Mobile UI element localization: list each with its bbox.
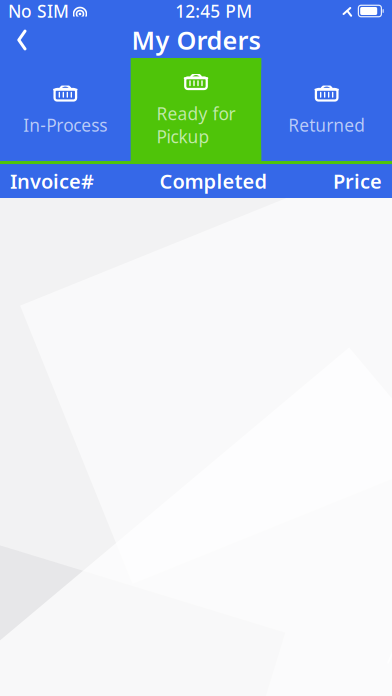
staticText: No SIM: [8, 0, 69, 22]
staticText: Invoice#: [10, 168, 94, 194]
staticText: Price: [333, 168, 382, 194]
button[interactable]: In-Process: [0, 69, 131, 149]
staticText: My Orders: [131, 23, 260, 57]
staticText: Returned: [288, 113, 365, 136]
staticText: In-Process: [23, 113, 107, 136]
button[interactable]: Back: [0, 22, 44, 58]
staticText: Completed: [159, 168, 267, 194]
staticText: Ready for Pickup: [156, 102, 235, 148]
button[interactable]: Ready for Pickup: [131, 58, 261, 161]
button[interactable]: Returned: [261, 69, 392, 149]
staticText: 12:45 PM: [175, 0, 252, 22]
